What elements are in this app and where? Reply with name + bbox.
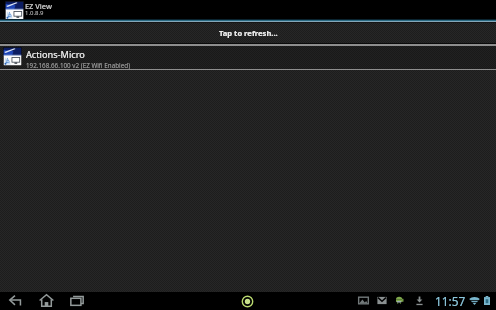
staticText: Actions-Micro [26,48,85,61]
staticText: Tap to refresh... [219,28,278,38]
button[interactable]: Back [9,295,22,306]
button[interactable]: Actions-Micro [0,46,496,69]
staticText: 11:57 [435,293,466,309]
button[interactable]: Home [39,294,54,307]
button[interactable]: Tap to refresh... [0,23,496,43]
staticText: 192.168.66.100 v2 (EZ Wifi Enabled) [26,61,131,70]
button[interactable]: Recent apps [70,295,84,306]
button[interactable]: Status tray, 11:57 [352,292,496,310]
button[interactable]: Screen cast active [240,294,255,309]
staticText: EZ View [25,1,52,11]
staticText: 1.0.8.9 [25,9,44,17]
